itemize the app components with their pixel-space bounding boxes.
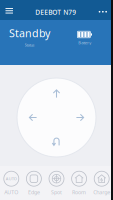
button[interactable]: Edge — [23, 164, 45, 200]
staticText: Battery — [78, 40, 91, 45]
staticText: AUTO — [4, 189, 18, 196]
staticText: Standby — [9, 26, 50, 40]
button[interactable]: Room — [68, 164, 90, 200]
staticText: Spot — [51, 189, 62, 196]
button[interactable]: Menu — [3, 4, 18, 17]
button[interactable]: Charge — [90, 164, 113, 200]
button[interactable]: Spot — [45, 164, 68, 200]
staticText: Charge — [93, 189, 110, 196]
staticText: DEEBOT N79 — [35, 8, 76, 17]
button[interactable]: AUTO — [0, 164, 23, 200]
staticText: Status — [24, 42, 34, 47]
staticText: AUTO — [6, 176, 17, 181]
staticText: Room — [72, 189, 86, 196]
staticText: Edge — [28, 189, 40, 196]
button[interactable]: More options — [94, 4, 110, 17]
